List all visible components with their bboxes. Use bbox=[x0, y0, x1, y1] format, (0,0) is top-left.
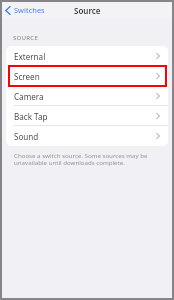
staticText: Camera bbox=[14, 91, 44, 102]
staticText: External bbox=[14, 51, 46, 62]
button[interactable]: Back bbox=[4, 3, 46, 17]
staticText: Screen bbox=[14, 71, 40, 82]
button[interactable]: External bbox=[6, 46, 168, 66]
button[interactable]: Sound bbox=[6, 126, 168, 146]
other: Back bbox=[5, 6, 11, 15]
button[interactable]: Back Tap bbox=[6, 106, 168, 126]
staticText: Switches bbox=[14, 5, 45, 15]
staticText: Source bbox=[74, 5, 101, 16]
button[interactable]: Camera bbox=[6, 86, 168, 106]
staticText: SOURCE bbox=[13, 34, 39, 42]
staticText: Back Tap bbox=[14, 111, 48, 122]
button[interactable]: Screen bbox=[6, 66, 168, 86]
staticText: Sound bbox=[14, 131, 39, 142]
staticText: Choose a switch source. Some sources may… bbox=[14, 151, 156, 167]
